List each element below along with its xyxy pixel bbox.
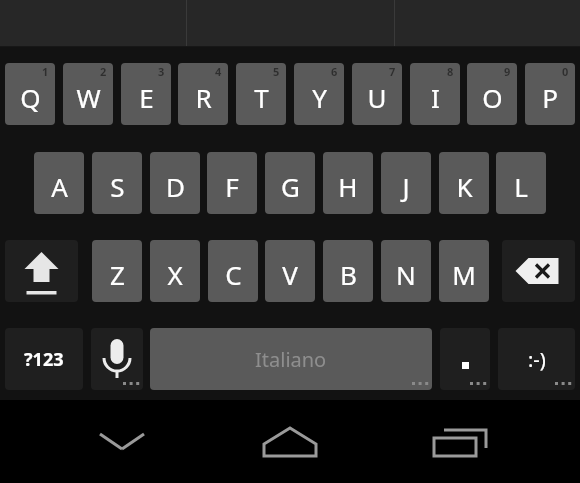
staticText: 7 [389,64,396,79]
staticText: F [225,169,239,204]
button[interactable]: J [381,152,431,214]
staticText: D [166,169,185,204]
staticText: M [452,257,476,292]
button[interactable]: K [439,152,489,214]
button[interactable]: Period [440,328,490,390]
button[interactable]: T [236,63,286,125]
staticText: Y [312,80,327,115]
staticText: V [282,257,298,292]
staticText: C [225,257,242,292]
staticText: U [367,80,387,115]
button[interactable]: W [63,63,113,125]
button[interactable]: :-) [498,328,575,390]
button[interactable]: U [352,63,402,125]
staticText: :-) [528,346,546,373]
staticText: G [281,169,300,204]
button[interactable]: D [150,152,200,214]
staticText: E [139,80,154,115]
staticText: H [338,169,358,204]
staticText: A [51,169,68,204]
button[interactable]: L [496,152,546,214]
staticText: W [76,80,101,115]
button[interactable]: ?123 [5,328,83,390]
staticText: B [340,257,357,292]
staticText: ?123 [24,347,64,372]
staticText: 6 [331,64,338,79]
button[interactable]: F [207,152,257,214]
button[interactable]: A [34,152,84,214]
button[interactable]: V [265,240,315,302]
button[interactable]: Z [92,240,142,302]
button[interactable]: S [92,152,142,214]
staticText: I [431,80,440,115]
staticText: K [456,169,473,204]
button[interactable]: M [439,240,489,302]
button[interactable]: R [178,63,228,125]
staticText: P [542,80,558,115]
button[interactable]: G [265,152,315,214]
staticText: Z [110,257,125,292]
staticText: R [195,80,212,115]
staticText: N [396,257,416,292]
button[interactable]: Shift [5,240,78,302]
staticText: 8 [447,64,454,79]
staticText: 1 [42,64,49,79]
button[interactable]: B [323,240,373,302]
staticText: O [482,80,503,115]
staticText: 5 [273,64,280,79]
button[interactable]: Voice input [91,328,143,390]
button[interactable]: P [525,63,575,125]
staticText: X [167,257,183,292]
staticText: 3 [158,64,165,79]
staticText: T [254,80,269,115]
button[interactable]: Home [250,422,330,462]
button[interactable]: E [121,63,171,125]
button[interactable]: N [381,240,431,302]
button[interactable]: Backspace [502,240,575,302]
button[interactable]: Y [294,63,344,125]
staticText: S [110,169,125,204]
button[interactable]: Italiano [150,328,432,390]
staticText: 9 [504,64,511,79]
button[interactable]: O [467,63,517,125]
staticText: 0 [562,64,569,79]
button[interactable]: C [208,240,258,302]
staticText: Italiano [255,346,327,373]
button[interactable]: X [150,240,200,302]
staticText: 4 [215,64,222,79]
button[interactable]: Hide keyboard [82,422,162,462]
staticText: 2 [100,64,107,79]
button[interactable]: H [323,152,373,214]
button[interactable]: I [410,63,460,125]
button[interactable]: Recent apps [420,422,500,462]
staticText: Q [20,80,41,115]
staticText: J [402,169,410,204]
staticText: L [514,169,528,204]
button[interactable]: Q [5,63,55,125]
